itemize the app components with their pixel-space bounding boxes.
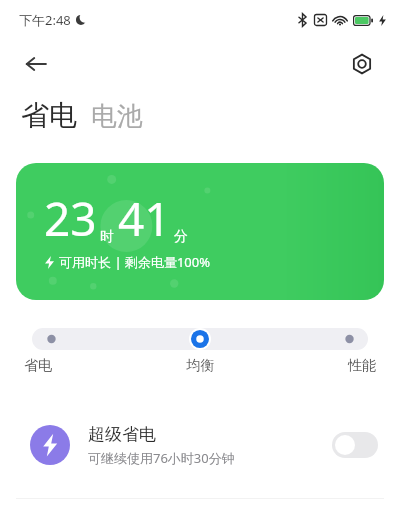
button[interactable]: 省电 <box>21 98 77 133</box>
staticText: 省电 <box>24 357 142 375</box>
button[interactable]: 超级省电 toggle <box>332 432 378 458</box>
staticText: 均衡 <box>142 357 259 375</box>
staticText: 下午2:48 <box>19 11 71 29</box>
staticText: 23 <box>44 187 97 250</box>
staticText: 性能 <box>259 357 376 375</box>
staticText: 省电 <box>21 98 77 133</box>
button[interactable]: 电池 <box>91 100 143 133</box>
button[interactable]: Settings <box>340 42 384 86</box>
button[interactable]: 均衡 <box>142 357 259 375</box>
button[interactable]: 超级省电 <box>0 410 400 480</box>
staticText: 可继续使用76小时30分钟 <box>88 449 235 467</box>
staticText: 电池 <box>91 100 143 133</box>
button[interactable]: 省电 <box>24 357 142 375</box>
button[interactable]: Back <box>14 42 58 86</box>
button[interactable]: 性能 <box>259 357 376 375</box>
staticText: 超级省电 <box>88 424 156 445</box>
button[interactable]: 23 <box>16 163 384 300</box>
staticText: 时 <box>100 228 114 246</box>
button[interactable]: 均衡 selected <box>187 326 213 352</box>
staticText: 41 <box>118 187 171 250</box>
staticText: 分 <box>174 228 188 246</box>
staticText: 可用时长 | 剩余电量100% <box>59 253 211 271</box>
button[interactable] <box>32 328 368 350</box>
